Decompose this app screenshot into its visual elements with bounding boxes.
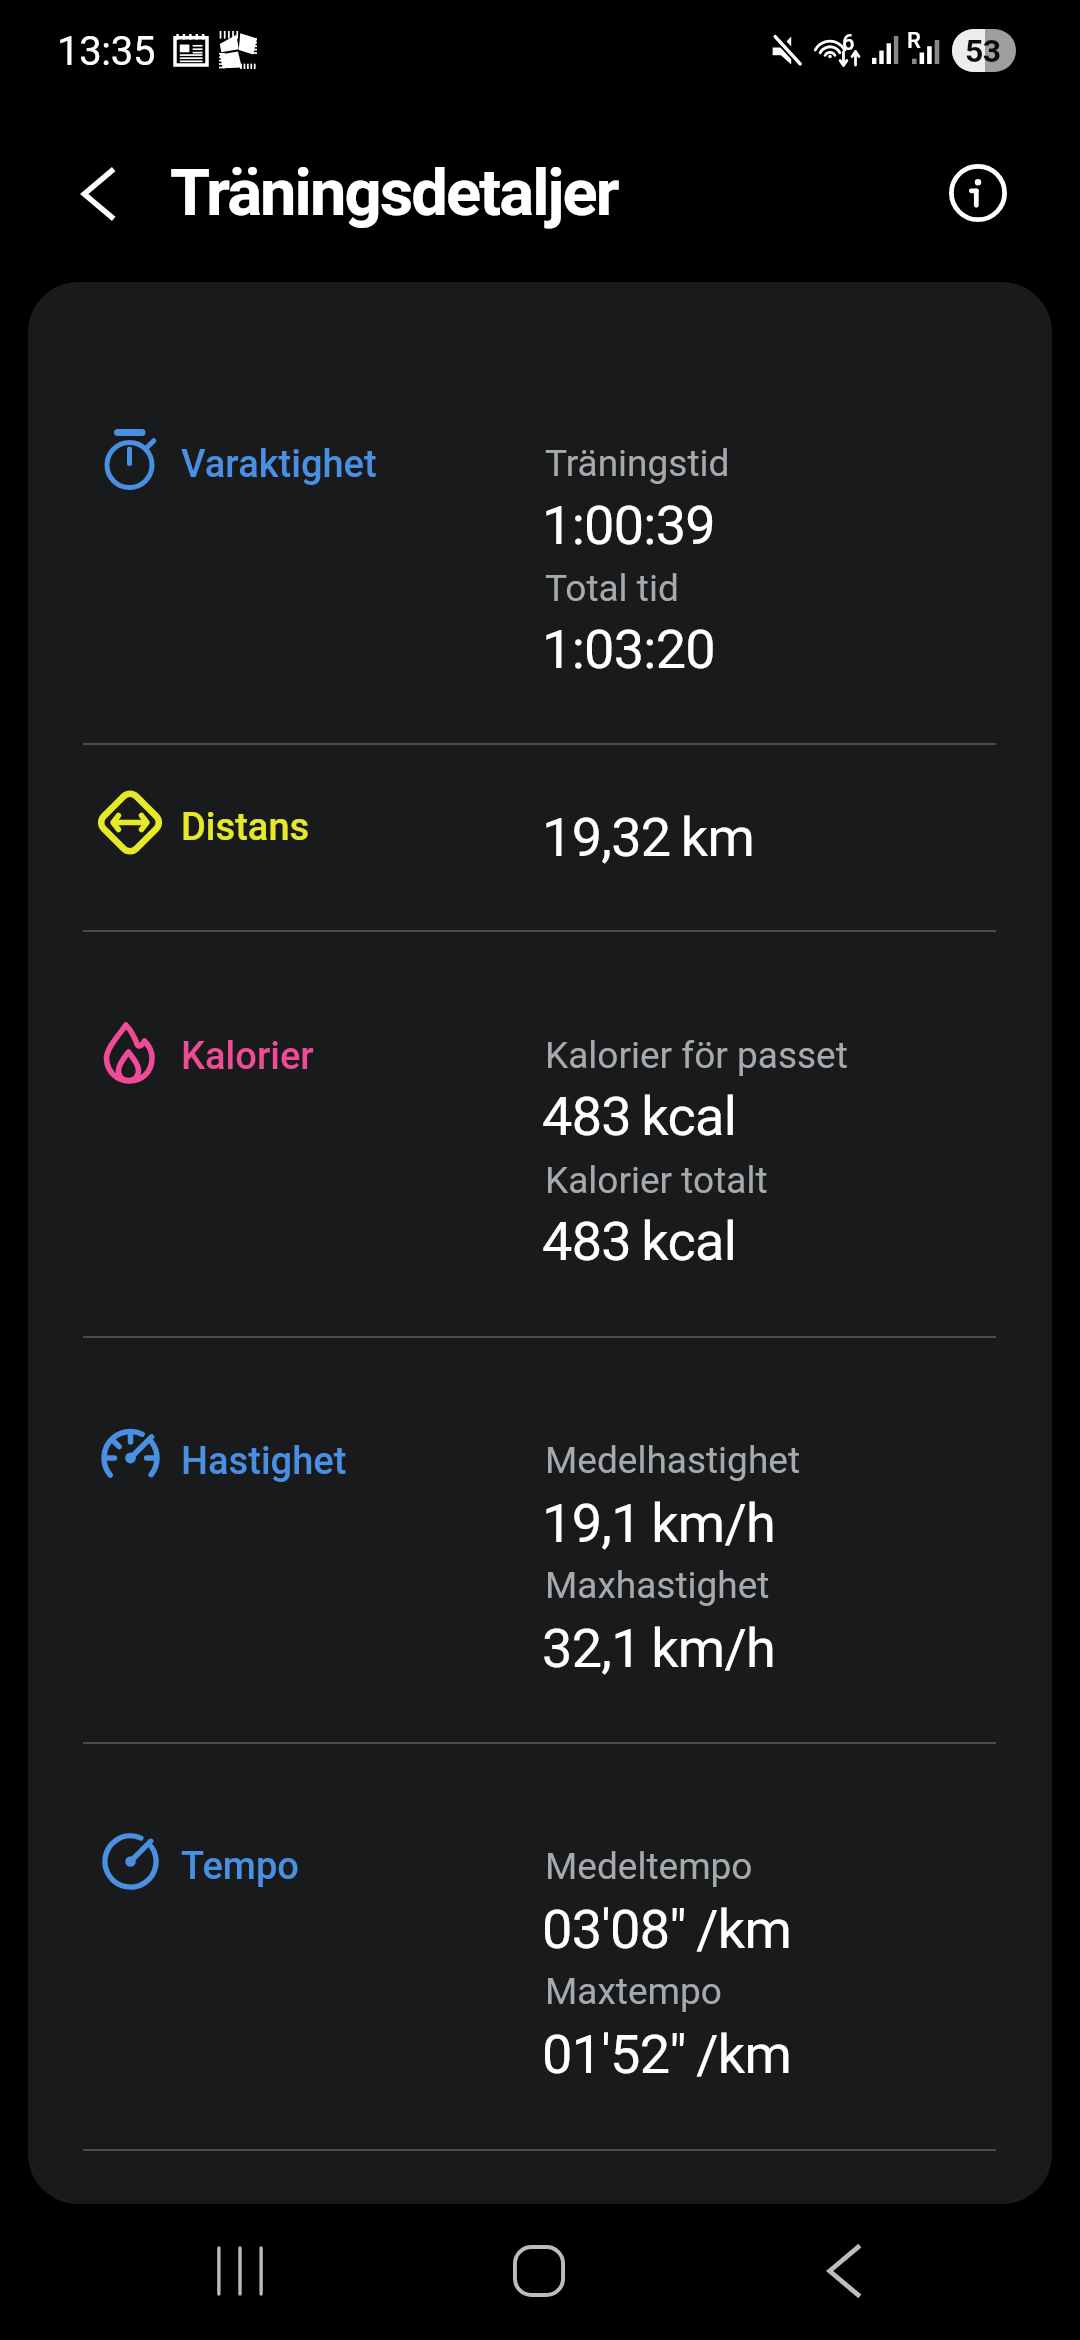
button[interactable]: [0, 1742, 1080, 2149]
staticText: Kalorier totalt: [545, 1159, 768, 1202]
staticText: Träningstid: [545, 442, 730, 485]
staticText: R: [907, 28, 921, 54]
staticText: Maxtempo: [545, 1970, 722, 2013]
staticText: Distans: [181, 805, 310, 849]
staticText: Varaktighet: [181, 442, 377, 486]
staticText: Tempo: [181, 1844, 299, 1888]
staticText: Maxhastighet: [545, 1564, 770, 1607]
staticText: 483 kcal: [542, 1210, 737, 1273]
staticText: 03'08" /km: [542, 1898, 792, 1961]
staticText: 01'52" /km: [542, 2023, 792, 2086]
staticText: 53: [965, 32, 1001, 69]
button[interactable]: [0, 743, 1080, 930]
staticText: Medeltempo: [545, 1845, 753, 1888]
button[interactable]: [0, 1336, 1080, 1742]
button[interactable]: Information: [942, 157, 1014, 229]
staticText: Träningsdetaljer: [170, 155, 618, 231]
staticText: 19,32 km: [542, 806, 755, 869]
staticText: Hastighet: [181, 1439, 347, 1483]
button[interactable]: Back: [62, 157, 136, 231]
staticText: Kalorier: [181, 1034, 314, 1078]
button[interactable]: Recent apps: [180, 2211, 300, 2331]
staticText: 32,1 km/h: [542, 1617, 776, 1680]
button[interactable]: Back: [784, 2211, 904, 2331]
staticText: 19,1 km/h: [542, 1492, 776, 1555]
button[interactable]: [0, 930, 1080, 1336]
staticText: Total tid: [545, 567, 679, 610]
button[interactable]: Home: [479, 2211, 599, 2331]
staticText: 483 kcal: [542, 1085, 737, 1148]
staticText: Kalorier för passet: [545, 1034, 848, 1077]
staticText: 13:35: [57, 28, 156, 75]
staticText: 1:00:39: [542, 494, 715, 557]
button[interactable]: [0, 282, 1080, 743]
staticText: Medelhastighet: [545, 1439, 800, 1482]
staticText: 1:03:20: [542, 618, 715, 681]
staticText: 6: [842, 30, 855, 56]
